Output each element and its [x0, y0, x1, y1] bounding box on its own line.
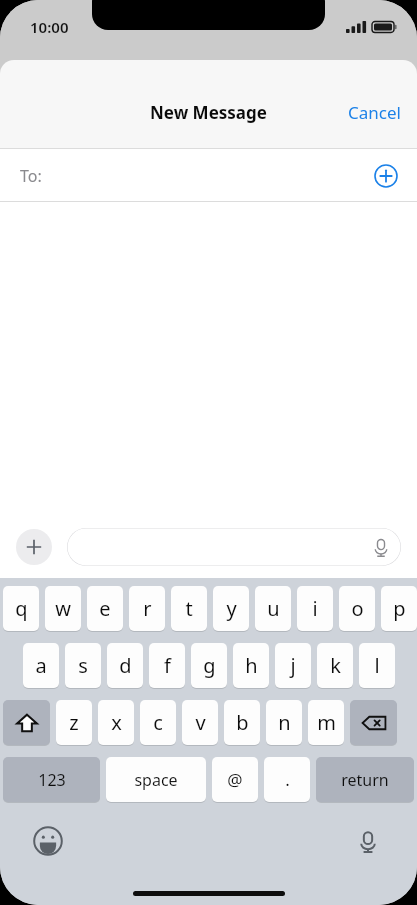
button[interactable]: .	[264, 757, 310, 802]
staticText: Cancel	[348, 101, 401, 124]
staticText: a	[35, 652, 47, 679]
staticText: q	[15, 595, 28, 622]
button[interactable]: Cancel	[332, 91, 417, 134]
staticText: k	[330, 652, 341, 679]
other: Dictate	[370, 536, 392, 558]
button[interactable]: h	[233, 643, 269, 688]
staticText: i	[312, 595, 318, 622]
button[interactable]: Emoji	[32, 825, 64, 857]
button[interactable]: 123	[3, 757, 100, 802]
staticText: h	[245, 652, 258, 679]
button[interactable]: l	[359, 643, 395, 688]
button[interactable]: p	[381, 586, 417, 631]
button[interactable]: a	[23, 643, 59, 688]
staticText: c	[153, 709, 163, 736]
staticText: e	[99, 595, 111, 622]
staticText: p	[393, 595, 406, 622]
staticText: v	[195, 709, 206, 736]
button[interactable]: g	[191, 643, 227, 688]
staticText: @	[227, 768, 243, 791]
button[interactable]: return	[316, 757, 414, 802]
staticText: u	[267, 595, 280, 622]
button[interactable]: @	[212, 757, 258, 802]
button[interactable]: w	[45, 586, 81, 631]
button[interactable]: i	[297, 586, 333, 631]
staticText: z	[69, 709, 79, 736]
button[interactable]: Shift	[3, 700, 50, 745]
button[interactable]: Backspace	[350, 700, 397, 745]
button[interactable]: j	[275, 643, 311, 688]
staticText: New Message	[150, 101, 267, 124]
button[interactable]: Add contact	[374, 164, 398, 188]
button[interactable]: v	[182, 700, 218, 745]
button[interactable]: t	[171, 586, 207, 631]
button[interactable]: s	[65, 643, 101, 688]
button[interactable]: Dictation	[353, 826, 383, 856]
staticText: n	[278, 709, 291, 736]
staticText: w	[55, 595, 71, 622]
button[interactable]: f	[149, 643, 185, 688]
staticText: 123	[38, 769, 66, 791]
staticText: return	[341, 769, 389, 791]
staticText: 10:00	[30, 17, 69, 37]
button[interactable]: y	[213, 586, 249, 631]
staticText: f	[164, 652, 171, 679]
button[interactable]: d	[107, 643, 143, 688]
button[interactable]: z	[56, 700, 92, 745]
button[interactable]: q	[3, 586, 39, 631]
staticText: d	[119, 652, 132, 679]
staticText: t	[185, 595, 193, 622]
button[interactable]: o	[339, 586, 375, 631]
button[interactable]: Dictate	[67, 528, 401, 566]
staticText: x	[111, 709, 122, 736]
button[interactable]: e	[87, 586, 123, 631]
staticText: To:	[20, 165, 42, 187]
staticText: m	[317, 709, 336, 736]
button[interactable]: x	[98, 700, 134, 745]
button[interactable]: b	[224, 700, 260, 745]
staticText: l	[374, 652, 380, 679]
staticText: space	[134, 769, 178, 791]
staticText: b	[236, 709, 249, 736]
staticText: j	[290, 652, 296, 679]
staticText: y	[226, 595, 237, 622]
staticText: .	[285, 768, 290, 791]
button[interactable]: m	[308, 700, 344, 745]
button[interactable]: u	[255, 586, 291, 631]
staticText: g	[203, 652, 216, 679]
button[interactable]: n	[266, 700, 302, 745]
staticText: r	[143, 595, 152, 622]
staticText: s	[78, 652, 88, 679]
button[interactable]: space	[106, 757, 206, 802]
button[interactable]: r	[129, 586, 165, 631]
button[interactable]: c	[140, 700, 176, 745]
staticText: o	[351, 595, 364, 622]
button[interactable]: More options	[16, 529, 52, 565]
button[interactable]: k	[317, 643, 353, 688]
